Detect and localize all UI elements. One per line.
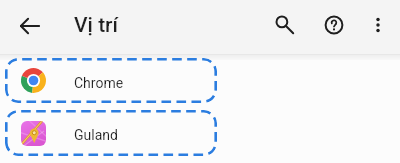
button[interactable]: Search: [267, 7, 303, 43]
staticText: Vị trí: [74, 13, 119, 38]
button[interactable]: Guland: [5, 110, 217, 156]
button[interactable]: Chrome: [5, 58, 217, 103]
staticText: Guland: [74, 127, 118, 143]
staticText: Chrome: [74, 75, 124, 91]
button[interactable]: More options: [360, 7, 396, 43]
button[interactable]: Back: [12, 8, 48, 44]
button[interactable]: Help: [316, 7, 352, 43]
